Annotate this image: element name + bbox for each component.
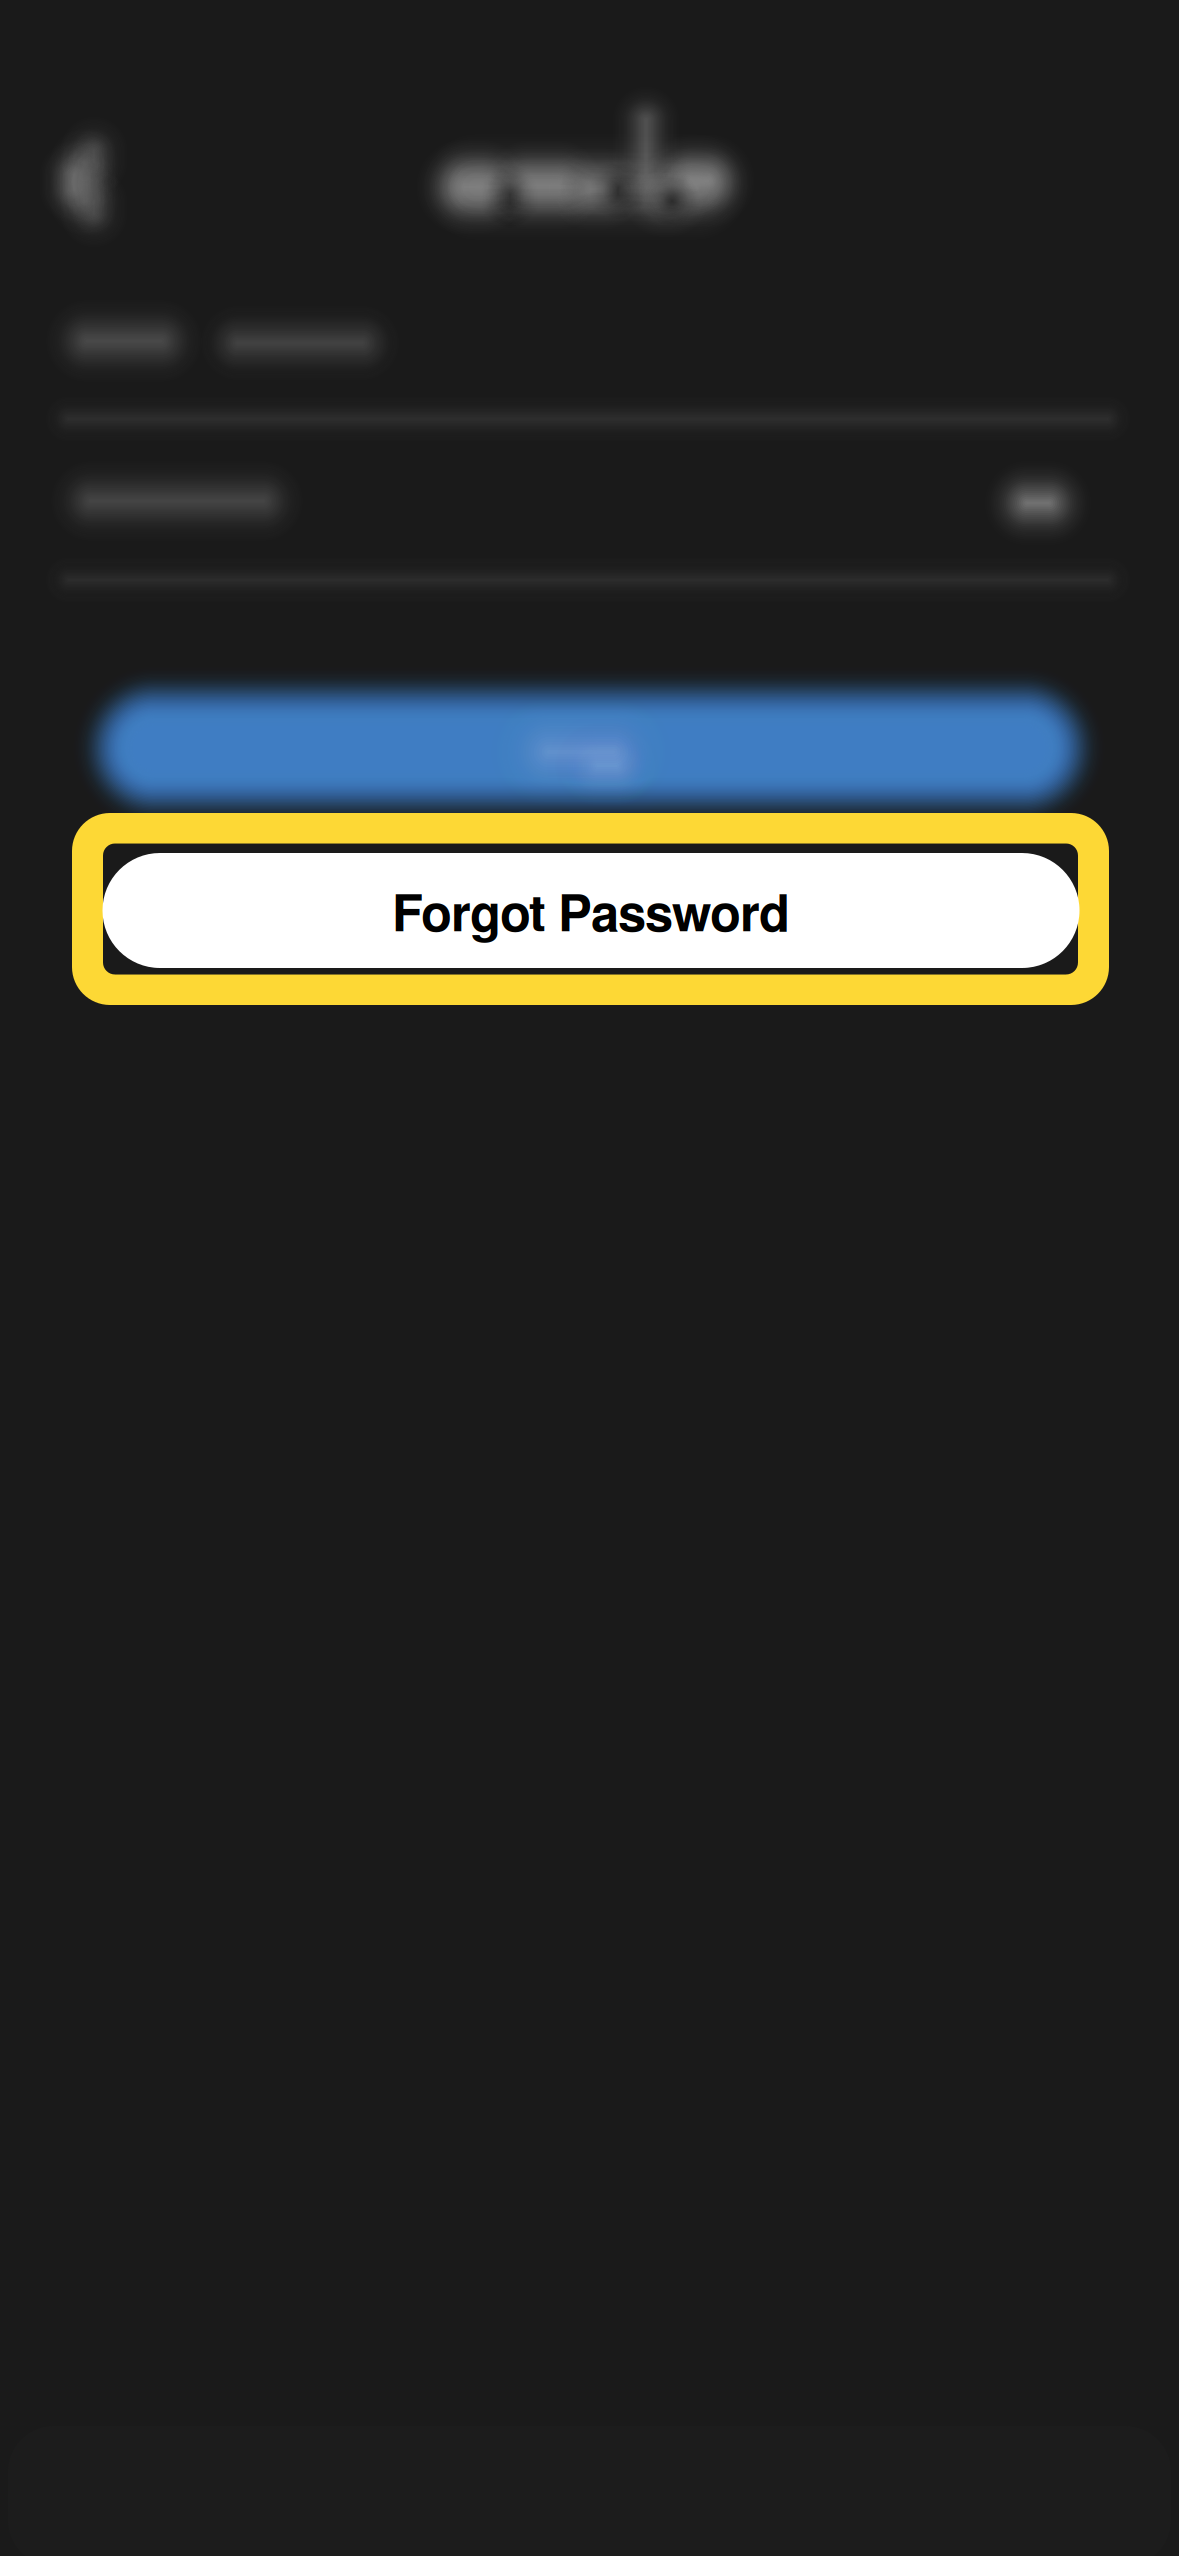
button[interactable]: Forgot Password (102, 853, 1079, 968)
button[interactable]: Show password (938, 403, 1138, 603)
staticText: Forgot Password (392, 874, 790, 947)
button[interactable]: Back (0, 87, 168, 277)
button[interactable] (9, 618, 1169, 878)
